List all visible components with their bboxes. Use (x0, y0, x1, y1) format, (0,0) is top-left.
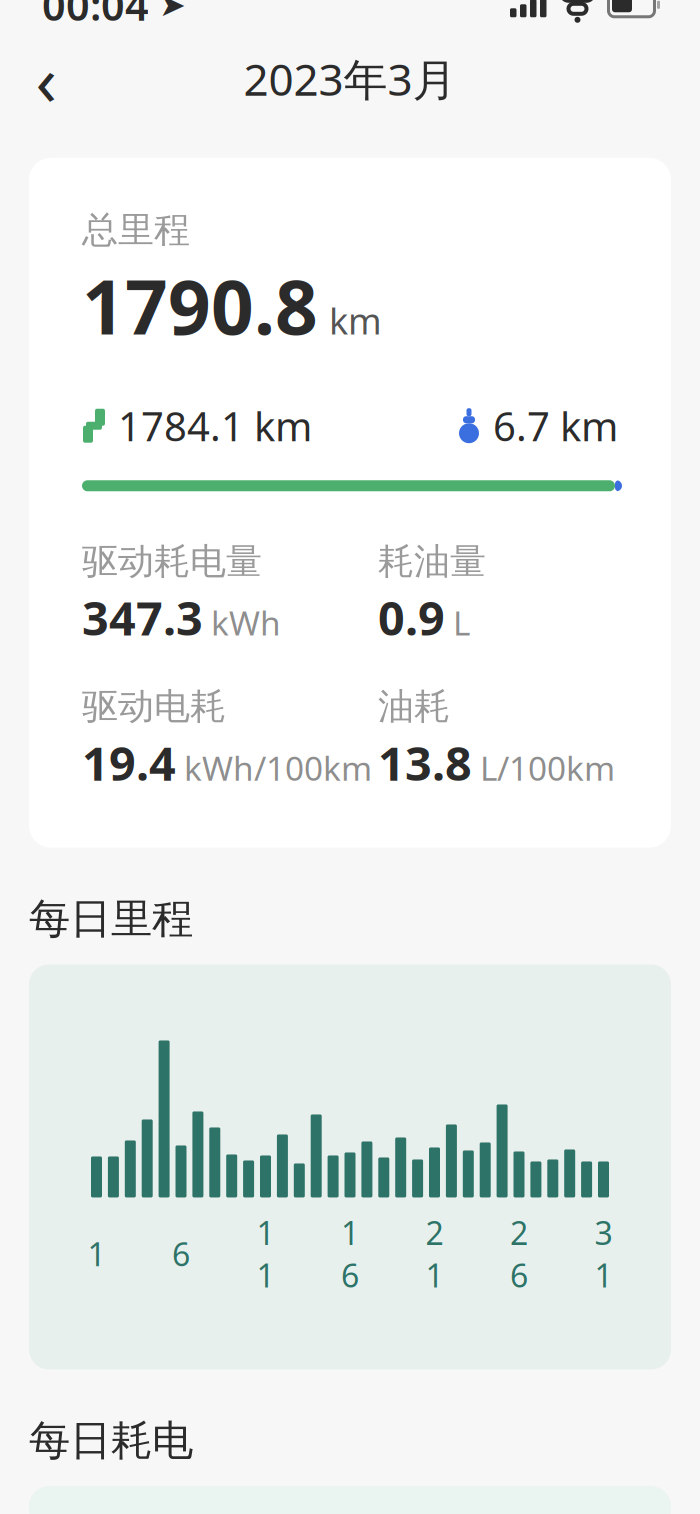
staticText: 每日耗电 (29, 1415, 193, 1466)
staticText: 2023年3月 (243, 50, 456, 108)
staticText: 6 (172, 1233, 190, 1275)
staticText: 0.9 (378, 586, 445, 648)
staticText: 1 (87, 1233, 105, 1275)
staticText: 每日里程 (29, 894, 193, 944)
staticText: 耗油量 (378, 539, 486, 583)
staticText: 6.7 km (493, 399, 618, 452)
staticText: ‹ (35, 33, 56, 125)
staticText: kWh/100km (184, 746, 372, 790)
staticText: 总里程 (82, 208, 190, 252)
staticText: 31 (594, 1211, 612, 1296)
staticText: 13.8 (378, 732, 472, 794)
staticText: 驱动电耗 (82, 684, 226, 729)
staticText: ➤ (159, 0, 186, 23)
staticText: 00:04 (42, 0, 149, 32)
staticText: L/100km (480, 746, 615, 790)
staticText: 21 (425, 1211, 443, 1296)
staticText: 19.4 (82, 732, 176, 794)
button[interactable]: 返回 (10, 43, 82, 115)
staticText: 26 (510, 1211, 528, 1296)
staticText: 油耗 (378, 684, 450, 729)
staticText: 347.3 (82, 586, 203, 648)
staticText: 11 (256, 1211, 274, 1296)
staticText: kWh (211, 600, 281, 645)
staticText: 1790.8 (82, 256, 318, 355)
staticText: 驱动耗电量 (82, 539, 262, 583)
staticText: km (329, 297, 382, 344)
staticText: 1784.1 km (118, 399, 312, 452)
staticText: 16 (341, 1211, 359, 1296)
staticText: L (453, 600, 470, 645)
